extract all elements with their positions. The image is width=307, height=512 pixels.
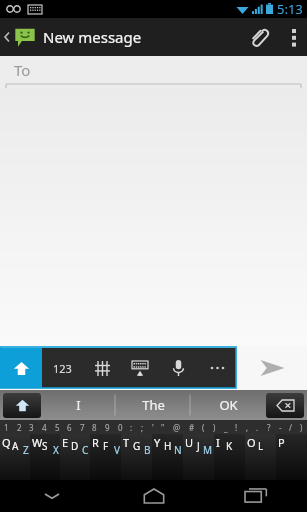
staticText: ? <box>267 422 271 433</box>
staticText: - <box>279 422 282 433</box>
button[interactable]: Y <box>152 434 183 480</box>
staticText: The <box>142 396 165 414</box>
staticText: ( <box>202 422 205 433</box>
staticText: 3 <box>29 422 34 433</box>
button[interactable]: More options <box>281 18 307 56</box>
staticText: . <box>256 422 259 433</box>
staticText: 8 <box>92 422 97 433</box>
button[interactable]: Q <box>0 434 30 480</box>
staticText: H <box>164 439 172 453</box>
button[interactable]: R <box>90 434 121 480</box>
staticText: C <box>82 443 89 457</box>
staticText: Y <box>154 435 161 450</box>
staticText: _ <box>224 422 228 433</box>
button[interactable]: I <box>214 434 245 480</box>
staticText: OK <box>219 396 238 414</box>
button[interactable]: The <box>116 390 191 420</box>
button[interactable]: E <box>60 434 90 480</box>
button[interactable]: P <box>276 434 307 480</box>
staticText: G <box>133 439 141 453</box>
button[interactable]: Attach <box>237 18 281 56</box>
staticText: A <box>12 439 19 453</box>
button[interactable]: Hide keyboard <box>0 480 103 512</box>
button[interactable]: 123 <box>45 351 79 385</box>
staticText: I <box>216 435 220 450</box>
staticText: ) <box>300 422 303 433</box>
button[interactable]: Up <box>0 18 148 56</box>
staticText: W <box>32 435 43 450</box>
button[interactable]: Recent apps <box>205 480 307 512</box>
button[interactable]: To <box>0 56 307 88</box>
staticText: 5 <box>55 422 60 433</box>
staticText: , <box>246 422 249 433</box>
button[interactable]: Voice input <box>162 351 194 385</box>
staticText: 123 <box>53 361 72 376</box>
staticText: F <box>103 439 109 453</box>
staticText: # <box>189 422 195 433</box>
staticText: 7 <box>80 422 85 433</box>
staticText: K <box>226 439 233 453</box>
staticText: ; <box>141 422 144 433</box>
button[interactable]: O <box>245 434 276 480</box>
staticText: X <box>53 443 59 457</box>
other: Up <box>3 29 11 45</box>
staticText: / <box>289 422 292 433</box>
staticText: 4 <box>42 422 47 433</box>
staticText: " <box>161 422 165 433</box>
staticText: R <box>92 435 99 450</box>
staticText: J <box>197 439 200 453</box>
staticText: 0 <box>118 422 123 433</box>
staticText: U <box>185 435 194 450</box>
staticText: M <box>203 443 213 457</box>
staticText: O <box>247 435 256 450</box>
staticText: B <box>144 443 151 457</box>
staticText: 2 <box>17 422 22 433</box>
button[interactable]: OK <box>191 390 266 420</box>
button[interactable]: W <box>30 434 60 480</box>
staticText: New message <box>43 27 142 47</box>
staticText: To <box>14 60 31 80</box>
staticText: L <box>258 439 264 453</box>
staticText: ! <box>235 422 238 433</box>
staticText: V <box>114 443 120 457</box>
staticText: S <box>42 439 48 453</box>
staticText: 9 <box>105 422 110 433</box>
button[interactable]: More <box>201 351 233 385</box>
button[interactable]: Home <box>103 480 205 512</box>
staticText: N <box>174 443 182 457</box>
staticText: 1 <box>4 422 9 433</box>
staticText: Q <box>2 435 11 450</box>
button[interactable]: Shift <box>3 393 41 418</box>
button[interactable]: U <box>183 434 214 480</box>
staticText: 6 <box>67 422 72 433</box>
staticText: D <box>71 439 79 453</box>
button[interactable]: I <box>41 390 116 420</box>
staticText: ' <box>152 422 154 433</box>
staticText: : <box>130 422 133 433</box>
staticText: Z <box>23 443 29 457</box>
button[interactable]: T <box>121 434 152 480</box>
staticText: P <box>278 435 285 450</box>
staticText: I <box>76 396 81 414</box>
button[interactable]: Backspace <box>266 393 304 418</box>
button[interactable]: Send <box>236 346 307 390</box>
staticText: 5:13 <box>277 0 303 18</box>
staticText: E <box>62 435 69 450</box>
button[interactable]: Settings <box>86 351 118 385</box>
button[interactable]: Shift <box>0 348 42 388</box>
staticText: T <box>123 435 130 450</box>
button[interactable]: Keyboard layout <box>124 351 156 385</box>
staticText: @ <box>173 422 181 433</box>
staticText: ) <box>213 422 216 433</box>
